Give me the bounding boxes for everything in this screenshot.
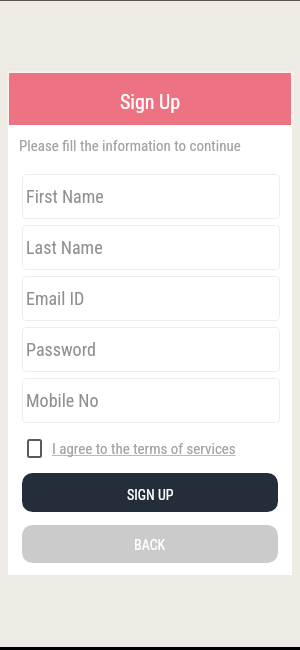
staticText: Sign Up (120, 90, 181, 113)
staticText: First Name (26, 186, 104, 207)
staticText: Email ID (26, 288, 85, 309)
staticText: Please fill the information to continue (19, 137, 241, 155)
staticText: BACK (134, 537, 166, 553)
button[interactable]: First Name (22, 174, 280, 219)
button[interactable]: BACK (22, 525, 278, 563)
staticText: SIGN UP (127, 487, 174, 503)
button[interactable]: Agree to terms checkbox (27, 439, 236, 458)
staticText: Mobile No (26, 390, 99, 411)
button[interactable]: Mobile No (22, 378, 280, 423)
button[interactable]: Password (22, 327, 280, 372)
button[interactable]: Last Name (22, 225, 280, 270)
staticText: I agree to the terms of services (52, 440, 236, 458)
staticText: Last Name (26, 237, 103, 258)
button[interactable]: Email ID (22, 276, 280, 321)
other: Agree to terms checkbox (27, 439, 42, 458)
button[interactable]: SIGN UP (22, 473, 278, 512)
staticText: Password (26, 339, 96, 360)
